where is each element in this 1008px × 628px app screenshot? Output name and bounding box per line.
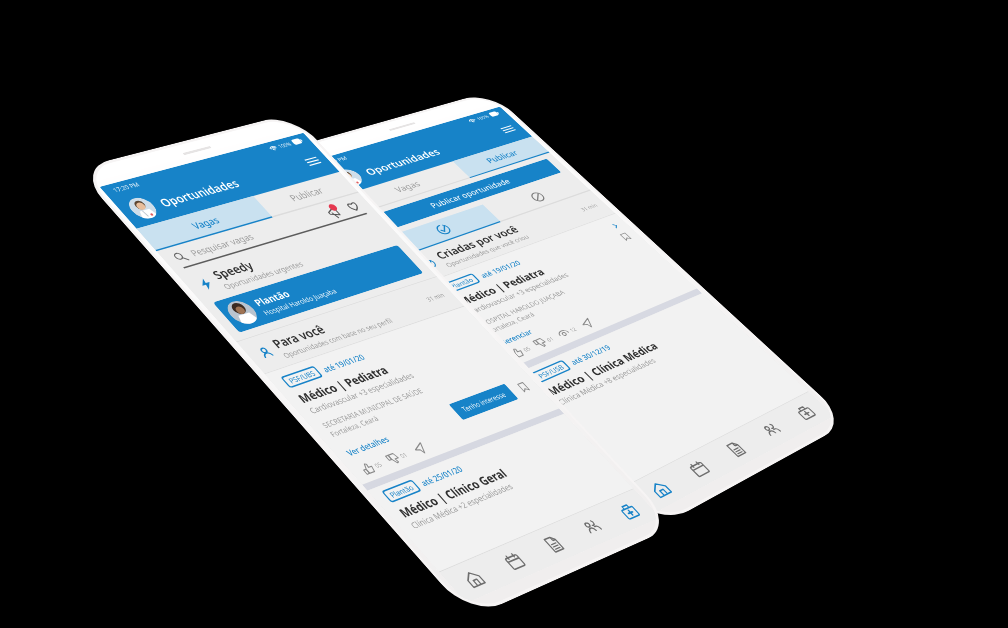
- staticText: Clínica Médica +8 especialidades: [555, 356, 658, 407]
- staticText: 100%: [475, 113, 491, 121]
- button[interactable]: Profile: [123, 195, 162, 221]
- staticText: Oportunidades que você criou: [443, 233, 532, 269]
- staticText: Oportunidades com base no seu perfil: [280, 316, 395, 360]
- button[interactable]: Gerenciar: [497, 327, 535, 347]
- staticText: Cardiovascular +3 especialidades: [306, 370, 417, 416]
- staticText: Clínica Médica +2 especialidades: [407, 481, 515, 531]
- staticText: Fortaleza, Ceará: [327, 413, 381, 439]
- staticText: Criadas por você: [432, 223, 522, 262]
- button[interactable]: Vagas: [136, 196, 272, 250]
- staticText: PSF/USB: [535, 363, 566, 380]
- staticText: 01: [397, 450, 410, 459]
- staticText: Plantão: [447, 276, 476, 291]
- button[interactable]: Menu: [496, 122, 520, 136]
- staticText: Vagas: [391, 178, 423, 194]
- staticText: até 25/01/20: [418, 463, 465, 488]
- staticText: Ver detalhes: [343, 433, 392, 458]
- staticText: até 19/01/20: [319, 352, 367, 374]
- button[interactable]: Profile: [331, 167, 367, 189]
- staticText: Vagas: [188, 214, 223, 232]
- staticText: Oportunidades urgentes: [220, 259, 306, 291]
- staticText: Publicar oportunidade: [427, 176, 513, 210]
- staticText: Para você: [268, 321, 329, 352]
- staticText: Speedy: [208, 258, 257, 282]
- button[interactable]: Home: [627, 465, 693, 513]
- staticText: Pesquisar vagas: [187, 208, 333, 259]
- staticText: 31 min: [578, 202, 599, 212]
- button[interactable]: Criadas: [384, 204, 500, 256]
- staticText: 05: [372, 460, 384, 469]
- staticText: até 19/01/20: [478, 258, 523, 280]
- staticText: 12: [567, 325, 579, 333]
- button[interactable]: Vagas: [342, 161, 469, 213]
- button[interactable]: Vagas: [597, 489, 660, 533]
- staticText: 100%: [276, 140, 293, 149]
- button[interactable]: Tenho interesse: [448, 384, 519, 420]
- button[interactable]: Publicar: [453, 136, 549, 177]
- staticText: Publicar: [483, 148, 521, 165]
- button[interactable]: Plantão: [213, 245, 423, 333]
- button[interactable]: Documentos: [704, 427, 767, 472]
- button[interactable]: Ver detalhes: [343, 433, 392, 458]
- button[interactable]: Favourites: [342, 199, 364, 213]
- staticText: 05: [521, 345, 533, 353]
- button[interactable]: Vagas: [775, 392, 835, 433]
- staticText: Médico | Clínico Geral: [395, 465, 511, 521]
- button[interactable]: Publicar oportunidade: [373, 159, 561, 231]
- staticText: Cardiovascular +3 especialidades: [466, 270, 571, 316]
- staticText: Médico | Pediatra: [294, 362, 392, 406]
- staticText: HOSPITAL HAROLDO JUAÇABA: [478, 288, 567, 328]
- staticText: PSF/UBS: [286, 368, 318, 385]
- staticText: Médico | Pediatra: [455, 265, 548, 308]
- staticText: 01: [544, 335, 556, 343]
- button[interactable]: Agenda: [480, 538, 547, 585]
- staticText: Publicar: [286, 184, 327, 204]
- button[interactable]: Pessoas: [740, 409, 801, 452]
- button[interactable]: Menu: [300, 153, 326, 170]
- staticText: 17:20 PM: [320, 155, 349, 167]
- button[interactable]: Abrir: [610, 222, 621, 229]
- staticText: Plantão: [250, 287, 293, 309]
- staticText: até 30/12/19: [568, 343, 613, 367]
- staticText: Plantão: [387, 482, 416, 500]
- staticText: Oportunidades: [155, 176, 243, 210]
- button[interactable]: Pessoas: [559, 505, 623, 550]
- staticText: Oportunidades: [361, 146, 444, 178]
- button[interactable]: Documentos: [520, 521, 586, 567]
- button[interactable]: Bookmark: [618, 232, 633, 242]
- button[interactable]: Agenda: [666, 446, 731, 492]
- button[interactable]: Publicar: [253, 172, 358, 216]
- button[interactable]: Home: [439, 555, 507, 603]
- staticText: 31 min: [424, 291, 446, 303]
- staticText: Fortaleza, Ceará: [485, 310, 537, 335]
- staticText: Gerenciar: [497, 327, 535, 347]
- staticText: Hospital Haroldo Juaçaba: [260, 286, 339, 317]
- staticText: Médico | Clínica Médica: [543, 339, 662, 399]
- staticText: SECRETARIA MUNICIPAL DE SAÚDE: [319, 386, 425, 430]
- button[interactable]: Encerradas: [483, 174, 590, 221]
- button[interactable]: Bookmark: [515, 381, 532, 393]
- button[interactable]: Announcements: [322, 204, 346, 220]
- staticText: 17:20 PM: [110, 180, 141, 194]
- staticText: Tenho interesse: [459, 390, 509, 414]
